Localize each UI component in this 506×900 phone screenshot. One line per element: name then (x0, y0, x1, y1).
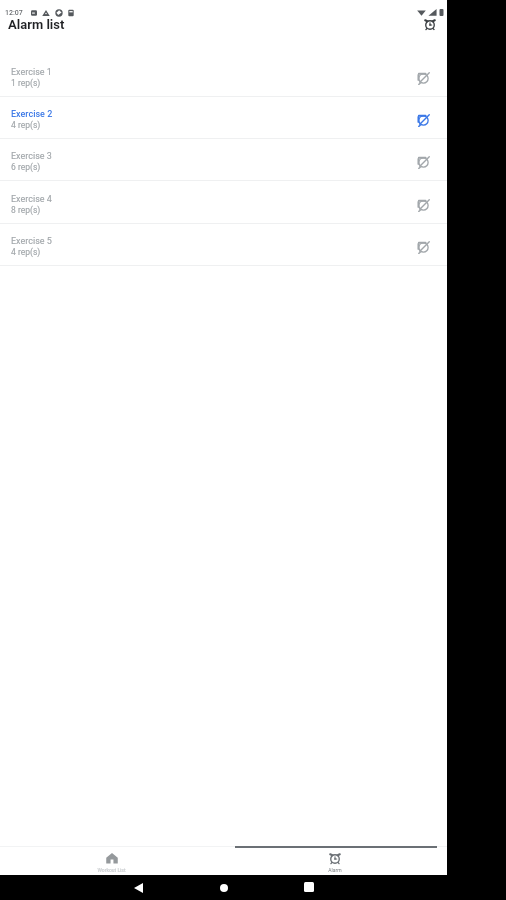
staticText: 4 rep(s) (11, 247, 41, 257)
staticText: 8 rep(s) (11, 205, 41, 215)
staticText: Alarm list (8, 17, 65, 32)
staticText: Exercise 1 (11, 67, 52, 78)
other: Back (134, 883, 143, 893)
button[interactable]: Workout List (0, 848, 223, 875)
staticText: Exercise 3 (11, 151, 52, 162)
button[interactable]: Add alarm (421, 15, 438, 32)
other: Home (220, 884, 228, 892)
other: Recents (304, 882, 314, 892)
button[interactable]: Exercise 5 (0, 224, 447, 266)
button[interactable]: Alarm (223, 848, 447, 875)
staticText: Exercise 2 (11, 109, 53, 120)
staticText: Exercise 5 (11, 236, 52, 247)
staticText: 12:07 (5, 9, 23, 17)
button[interactable]: Exercise 4 (0, 182, 447, 224)
staticText: Alarm (328, 867, 342, 873)
button[interactable]: Exercise 2 (0, 97, 447, 139)
staticText: Exercise 4 (11, 194, 52, 205)
staticText: 6 rep(s) (11, 162, 41, 172)
staticText: 1 rep(s) (11, 78, 41, 88)
button[interactable]: Exercise 3 (0, 139, 447, 181)
staticText: 4 rep(s) (11, 120, 41, 130)
staticText: Workout List (97, 867, 126, 873)
button[interactable]: Exercise 1 (0, 55, 447, 97)
